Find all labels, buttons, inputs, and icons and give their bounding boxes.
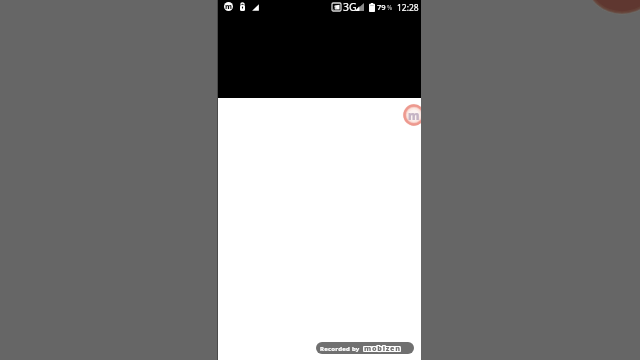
staticText: % <box>387 3 393 11</box>
staticText: m <box>225 2 232 11</box>
staticText: 79 <box>377 2 386 12</box>
other: Mobile signal strength <box>355 3 364 11</box>
staticText: mobizen <box>365 343 402 352</box>
staticText: Recorded by <box>320 345 360 353</box>
other: Screen lock <box>240 3 245 11</box>
staticText: mobizen <box>363 342 400 351</box>
staticText: 12:28 <box>397 2 419 14</box>
other: Mobizen watermark <box>402 103 421 127</box>
staticText: mobizen <box>365 344 402 353</box>
other: Wi-Fi signal <box>252 4 259 11</box>
staticText: mobizen <box>364 342 401 351</box>
staticText: 3G <box>343 0 357 14</box>
staticText: mobizen <box>363 343 400 352</box>
other: Mobizen recording <box>224 2 233 11</box>
other: Screen mirroring <box>332 3 341 11</box>
staticText: mobizen <box>364 344 401 353</box>
staticText: mobizen <box>365 342 402 351</box>
staticText: m <box>408 108 420 124</box>
button[interactable]: Recorded by <box>316 342 414 354</box>
staticText: mobizen <box>364 343 401 352</box>
staticText: mobizen <box>363 344 400 353</box>
other: Battery 79 percent <box>369 3 375 12</box>
